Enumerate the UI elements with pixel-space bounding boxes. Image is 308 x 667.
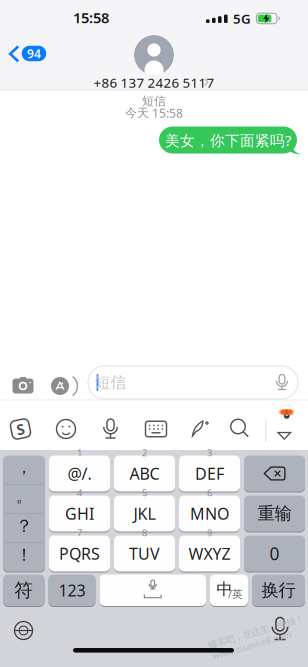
button[interactable]: MNO bbox=[179, 494, 240, 532]
button[interactable] bbox=[0, 0, 308, 667]
button[interactable] bbox=[0, 0, 308, 667]
staticText: 9 bbox=[207, 526, 212, 539]
staticText: GHI bbox=[65, 503, 94, 524]
button[interactable]: 重输 bbox=[244, 494, 305, 532]
button[interactable] bbox=[0, 0, 308, 667]
staticText: www.zuanke8.com bbox=[211, 639, 293, 651]
staticText: ？ bbox=[15, 515, 32, 537]
staticText: /英 bbox=[228, 587, 243, 601]
staticText: 0 bbox=[269, 542, 279, 565]
button[interactable] bbox=[0, 0, 308, 667]
button[interactable] bbox=[244, 454, 305, 492]
staticText: 换行 bbox=[261, 580, 295, 601]
button[interactable] bbox=[0, 0, 308, 667]
button[interactable] bbox=[0, 0, 308, 667]
staticText: 短信 bbox=[94, 373, 126, 392]
staticText: 5 bbox=[142, 486, 147, 499]
button[interactable]: 短信 bbox=[0, 0, 308, 667]
button[interactable]: 中 bbox=[210, 573, 248, 607]
button[interactable]: JKL bbox=[114, 494, 175, 532]
button[interactable] bbox=[0, 0, 308, 667]
button[interactable]: 94 bbox=[0, 0, 308, 667]
button[interactable]: 0 bbox=[244, 534, 305, 572]
button[interactable]: WXYZ bbox=[179, 534, 240, 572]
button[interactable] bbox=[0, 0, 308, 667]
staticText: DEF bbox=[195, 463, 224, 484]
button[interactable]: 符 bbox=[3, 573, 44, 607]
staticText: 4 bbox=[77, 486, 82, 499]
button[interactable]: DEF bbox=[179, 454, 240, 492]
staticText: 符 bbox=[14, 579, 33, 602]
staticText: +86 137 2426 5117 bbox=[93, 74, 214, 91]
button[interactable]: @/. bbox=[49, 454, 110, 492]
button[interactable]: PQRS bbox=[49, 534, 110, 572]
staticText: 3 bbox=[207, 446, 212, 459]
staticText: MNO bbox=[190, 503, 229, 524]
button[interactable]: S bbox=[0, 0, 308, 667]
staticText: S bbox=[16, 419, 24, 439]
button[interactable]: +86 137 2426 5117 bbox=[0, 0, 308, 667]
staticText: ， bbox=[16, 458, 32, 477]
staticText: 7 bbox=[77, 526, 82, 539]
button[interactable] bbox=[0, 0, 308, 667]
staticText: 美女，你下面紧吗? bbox=[165, 131, 291, 150]
button[interactable] bbox=[0, 0, 308, 667]
staticText: 6 bbox=[207, 486, 212, 499]
staticText: ！ bbox=[15, 544, 32, 566]
staticText: PQRS bbox=[59, 543, 100, 564]
staticText: 重输 bbox=[257, 503, 291, 524]
staticText: 1 bbox=[77, 446, 82, 459]
staticText: 。 bbox=[16, 487, 32, 506]
button[interactable] bbox=[99, 573, 206, 607]
staticText: 94 bbox=[27, 45, 41, 61]
staticText: 2 bbox=[142, 446, 147, 459]
button[interactable] bbox=[0, 0, 308, 667]
button[interactable]: ABC bbox=[114, 454, 175, 492]
staticText: ABC bbox=[129, 463, 159, 484]
staticText: JKL bbox=[133, 503, 155, 524]
button[interactable]: 换行 bbox=[252, 573, 305, 607]
staticText: 123 bbox=[58, 580, 85, 601]
staticText: TUV bbox=[129, 543, 160, 564]
staticText: 8 bbox=[142, 526, 147, 539]
staticText: 赚客吧，在这里，赚钱！ bbox=[206, 626, 305, 638]
staticText: @/. bbox=[67, 463, 91, 484]
staticText: 15:58 bbox=[152, 105, 183, 121]
button[interactable]: ， bbox=[3, 454, 45, 572]
button[interactable]: 123 bbox=[48, 573, 95, 607]
button[interactable]: GHI bbox=[49, 494, 110, 532]
button[interactable]: TUV bbox=[114, 534, 175, 572]
staticText: 今天 bbox=[125, 106, 149, 120]
staticText: 中 bbox=[216, 579, 232, 599]
staticText: 15:58 bbox=[73, 8, 109, 27]
staticText: 短信 bbox=[142, 94, 166, 108]
staticText: WXYZ bbox=[188, 543, 230, 564]
staticText: 5G bbox=[233, 10, 251, 27]
